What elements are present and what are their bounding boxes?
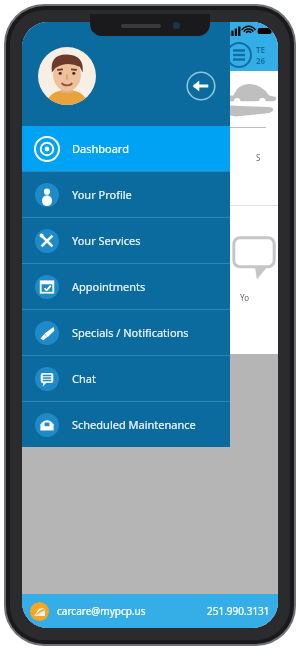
button[interactable]: Email bbox=[22, 594, 278, 628]
staticText: Your Profile bbox=[72, 187, 132, 202]
staticText: Yo bbox=[240, 292, 249, 303]
staticText: Specials / Notifications bbox=[72, 325, 189, 340]
staticText: Chat bbox=[72, 371, 96, 386]
staticText: carcare@mypcp.us bbox=[57, 604, 146, 618]
staticText: Your Services bbox=[72, 233, 141, 248]
staticText: TE bbox=[256, 44, 266, 55]
button[interactable]: Your Services bbox=[22, 218, 230, 263]
button[interactable]: Back bbox=[186, 71, 216, 101]
button[interactable]: Open navigation menu bbox=[226, 42, 252, 68]
staticText: 26 bbox=[256, 55, 266, 66]
staticText: Appointments bbox=[72, 279, 146, 294]
staticText: Dashboard bbox=[72, 141, 129, 156]
button[interactable]: Your Profile bbox=[22, 172, 230, 217]
staticText: Scheduled Maintenance bbox=[72, 417, 196, 432]
button[interactable]: Scheduled Maintenance bbox=[22, 402, 230, 447]
button[interactable]: Profile photo bbox=[38, 47, 96, 105]
staticText: 9:41 bbox=[30, 24, 50, 38]
button[interactable]: Dashboard bbox=[22, 126, 230, 171]
staticText: 251.990.3131 bbox=[207, 604, 270, 618]
staticText: S bbox=[256, 152, 261, 163]
button[interactable]: Appointments bbox=[22, 264, 230, 309]
other: Email bbox=[30, 602, 49, 621]
button[interactable]: Specials / Notifications bbox=[22, 310, 230, 355]
button[interactable]: Chat bbox=[22, 356, 230, 401]
